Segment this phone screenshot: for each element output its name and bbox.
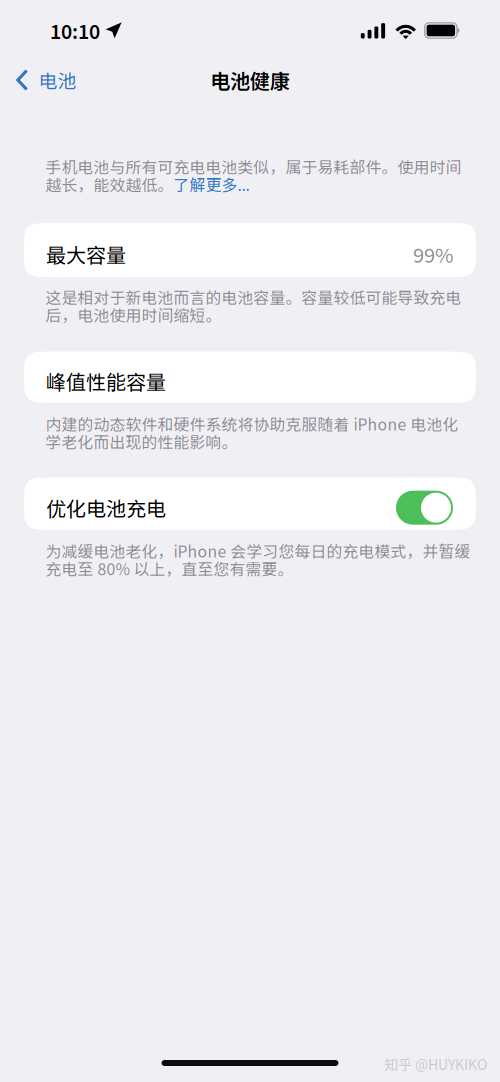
staticText: 后，电池使用时间缩短。 xyxy=(45,303,221,326)
button[interactable]: 电池 xyxy=(0,58,86,101)
button[interactable]: 了解更多... xyxy=(173,173,249,196)
staticText: 充电至 80% 以上，直至您有需要。 xyxy=(45,557,293,580)
staticText: 内建的动态软件和硬件系统将协助克服随着 iPhone 电池化 xyxy=(45,412,458,435)
button[interactable]: 峰值性能容量 xyxy=(0,352,500,403)
staticText: 峰值性能容量 xyxy=(46,367,166,396)
staticText: 优化电池充电 xyxy=(46,493,166,522)
staticText: 电池健康 xyxy=(210,65,290,94)
staticText: 10:10 xyxy=(50,16,100,44)
staticText: 最大容量 xyxy=(46,240,126,269)
staticText: 了解更多... xyxy=(173,173,249,196)
staticText: 99% xyxy=(413,240,453,269)
button[interactable]: 优化电池充电 xyxy=(396,491,453,525)
staticText: 这是相对于新电池而言的电池容量。容量较低可能导致充电 xyxy=(45,286,461,308)
staticText: 知乎 @HUYKIKO xyxy=(384,1054,487,1074)
staticText: 电池 xyxy=(38,66,76,93)
button[interactable]: 最大容量 xyxy=(0,223,500,277)
staticText: 为减缓电池老化，iPhone 会学习您每日的充电模式，并暂缓 xyxy=(45,539,470,562)
staticText: 手机电池与所有可充电电池类似，属于易耗部件。使用时间 xyxy=(45,155,461,178)
staticText: 学老化而出现的性能影响。 xyxy=(45,430,237,453)
staticText: 越长，能效越低。 xyxy=(45,173,173,196)
